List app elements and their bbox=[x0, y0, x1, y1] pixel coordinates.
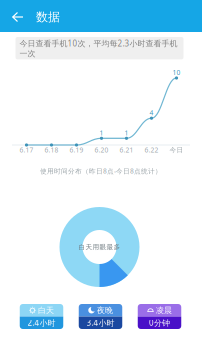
staticText: 凌晨 bbox=[156, 305, 172, 315]
staticText: 6.21 bbox=[119, 146, 133, 154]
staticText: 1 bbox=[124, 128, 128, 137]
button[interactable]: 白天 bbox=[20, 304, 63, 329]
staticText: 6.22 bbox=[144, 146, 158, 154]
staticText: 夜晚 bbox=[97, 305, 113, 315]
staticText: 6.18 bbox=[44, 146, 58, 154]
staticText: 数据 bbox=[36, 10, 60, 24]
staticText: 1 bbox=[99, 128, 103, 137]
staticText: 今日 bbox=[169, 146, 183, 154]
staticText: 4 bbox=[149, 108, 153, 117]
staticText: 6.19 bbox=[69, 146, 83, 154]
staticText: 6.20 bbox=[94, 146, 108, 154]
staticText: 3.4小时 bbox=[86, 317, 114, 328]
button[interactable]: 夜晚 bbox=[79, 304, 122, 329]
staticText: 2.4小时 bbox=[27, 317, 55, 328]
button[interactable]: Back bbox=[6, 5, 30, 29]
staticText: 0分钟 bbox=[149, 317, 170, 328]
staticText: 白天 bbox=[38, 305, 54, 315]
staticText: 今日查看手机10次，平均每2.3小时查看手机一次 bbox=[19, 38, 177, 58]
staticText: 白天用眼最多 bbox=[78, 243, 120, 251]
staticText: 10 bbox=[172, 68, 180, 77]
staticText: 6.17 bbox=[19, 146, 33, 154]
staticText: 使用时间分布（昨日8点-今日8点统计） bbox=[40, 167, 162, 175]
button[interactable]: 凌晨 bbox=[138, 304, 181, 329]
